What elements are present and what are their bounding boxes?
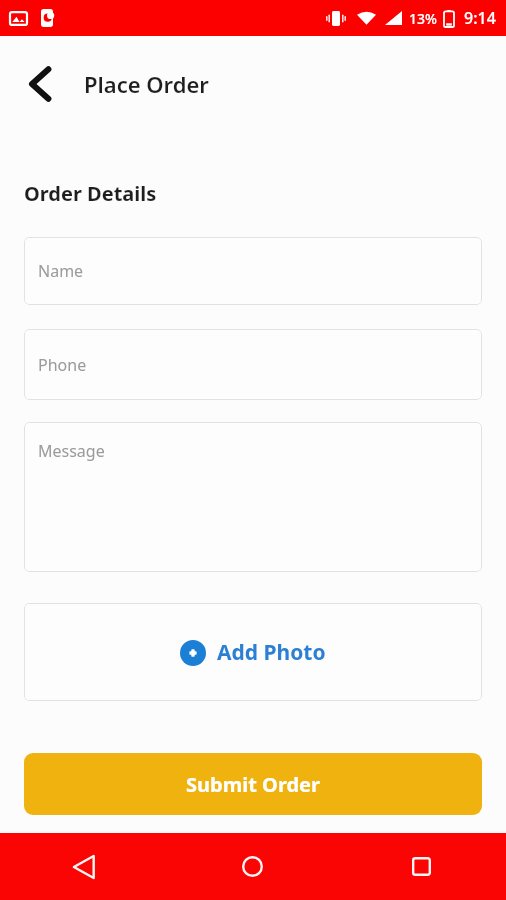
button[interactable]: Back bbox=[14, 58, 66, 110]
staticText: 13% bbox=[409, 9, 437, 28]
staticText: Place Order bbox=[84, 69, 209, 99]
staticText: Phone bbox=[38, 354, 87, 376]
button[interactable]: Submit Order bbox=[24, 753, 482, 815]
button[interactable]: Phone bbox=[24, 329, 482, 400]
button[interactable]: Name bbox=[24, 237, 482, 305]
staticText: Add Photo bbox=[217, 638, 326, 667]
staticText: Order Details bbox=[24, 180, 157, 207]
button[interactable]: Home bbox=[168, 833, 337, 900]
staticText: Submit Order bbox=[186, 771, 320, 798]
staticText: 9:14 bbox=[464, 7, 496, 29]
button[interactable]: Message bbox=[24, 422, 482, 572]
staticText: Name bbox=[38, 260, 84, 282]
staticText: Message bbox=[38, 440, 105, 462]
button[interactable]: Back bbox=[0, 833, 168, 900]
button[interactable]: Add Photo bbox=[24, 603, 482, 701]
button[interactable]: Recent apps bbox=[337, 833, 506, 900]
